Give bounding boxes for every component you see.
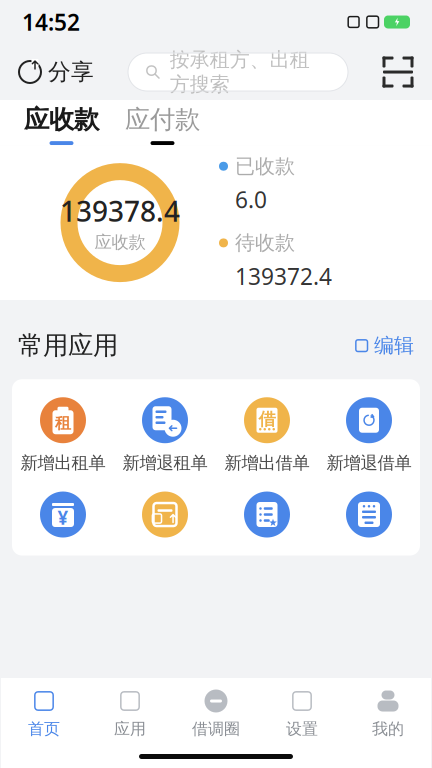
button[interactable]: 扫一扫 bbox=[382, 48, 432, 96]
button[interactable]: 应用 bbox=[87, 688, 173, 739]
button[interactable]: 租 bbox=[12, 397, 114, 473]
button[interactable] bbox=[318, 491, 420, 537]
button[interactable]: 编辑 bbox=[353, 333, 414, 358]
staticText: 14:52 bbox=[22, 7, 80, 37]
button[interactable]: 我的 bbox=[345, 688, 431, 739]
staticText: 按承租方、出租方搜索 bbox=[170, 47, 310, 96]
staticText: 待收款 bbox=[235, 231, 295, 255]
staticText: 新增出租单 bbox=[20, 452, 105, 473]
staticText: ¥ bbox=[57, 505, 68, 530]
button[interactable] bbox=[216, 491, 318, 537]
button[interactable]: 分享 bbox=[0, 50, 94, 94]
staticText: 首页 bbox=[28, 719, 60, 739]
staticText: 分享 bbox=[48, 58, 94, 86]
button[interactable]: 借 bbox=[216, 397, 318, 473]
staticText: 借 bbox=[258, 409, 275, 430]
button[interactable]: 新增退租单 bbox=[114, 397, 216, 473]
staticText: 新增出借单 bbox=[224, 452, 309, 473]
button[interactable]: 应付款 bbox=[125, 104, 200, 145]
staticText: 应用 bbox=[114, 719, 146, 739]
staticText: 139372.4 bbox=[235, 261, 332, 291]
staticText: 常用应用 bbox=[18, 330, 118, 361]
button[interactable]: 应收款 bbox=[24, 104, 99, 145]
button[interactable] bbox=[114, 491, 216, 537]
button[interactable]: 按承租方、出租方搜索 bbox=[128, 53, 348, 91]
staticText: 租 bbox=[55, 413, 71, 433]
button[interactable]: 借调圈 bbox=[173, 688, 259, 739]
staticText: 借调圈 bbox=[192, 719, 240, 739]
staticText: 应付款 bbox=[125, 104, 200, 135]
staticText: 6.0 bbox=[235, 184, 267, 215]
staticText: 应收款 bbox=[94, 232, 145, 253]
staticText: 编辑 bbox=[374, 333, 414, 358]
staticText: 新增退借单 bbox=[326, 452, 411, 473]
button[interactable]: 新增退借单 bbox=[318, 397, 420, 473]
button[interactable]: 设置 bbox=[259, 688, 345, 739]
staticText: 应收款 bbox=[24, 104, 99, 135]
button[interactable]: 首页 bbox=[1, 688, 87, 739]
staticText: 已收款 bbox=[235, 154, 295, 178]
button[interactable]: ¥ bbox=[12, 491, 114, 537]
staticText: 139378.4 bbox=[60, 192, 180, 230]
staticText: 我的 bbox=[372, 719, 404, 739]
staticText: 设置 bbox=[286, 719, 318, 739]
staticText: 新增退租单 bbox=[122, 452, 207, 473]
